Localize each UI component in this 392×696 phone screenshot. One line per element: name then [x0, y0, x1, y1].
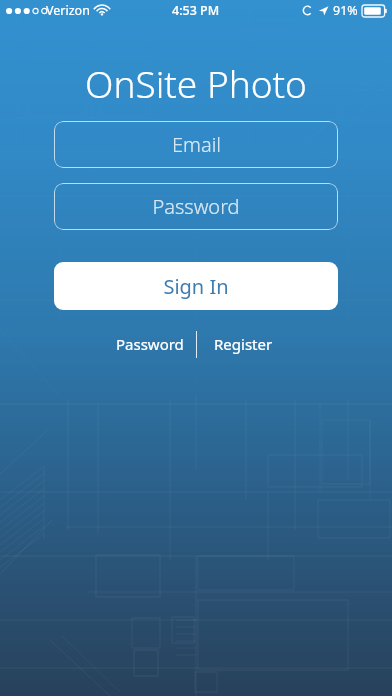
button[interactable]: Email — [54, 121, 338, 168]
button[interactable]: Sign In — [54, 262, 338, 310]
button[interactable]: Password — [54, 183, 338, 230]
button[interactable]: Password — [104, 329, 196, 359]
staticText: Password — [116, 334, 184, 354]
staticText: Sign In — [163, 273, 229, 300]
staticText: 4:53 PM — [172, 2, 220, 19]
staticText: OnSite Photo — [85, 58, 307, 108]
staticText: Password — [152, 193, 240, 220]
button[interactable]: Register — [197, 329, 289, 359]
staticText: Register — [214, 334, 273, 354]
staticText: 91% — [333, 2, 358, 19]
staticText: Verizon — [46, 2, 90, 19]
staticText: Email — [172, 131, 221, 158]
